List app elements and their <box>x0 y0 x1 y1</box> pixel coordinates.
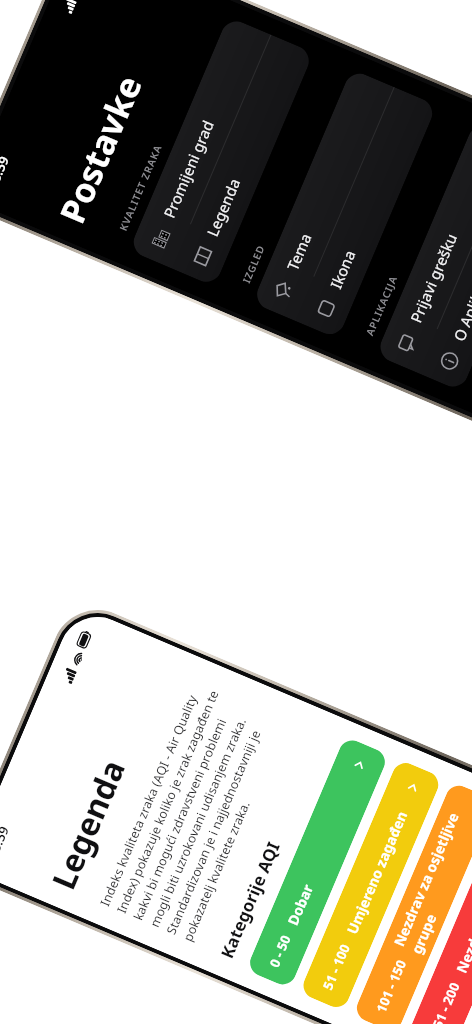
staticText: Postavke <box>48 68 152 230</box>
staticText: O Aplikaciji <box>449 264 472 344</box>
button[interactable]: 0 - 50 <box>246 736 389 989</box>
staticText: 05:59 <box>0 823 13 861</box>
staticText: Dobar <box>283 881 317 928</box>
staticText: Kategorije AQI <box>215 837 285 961</box>
button[interactable]: Legend <box>172 35 314 287</box>
other: About the app <box>437 348 462 373</box>
other: Legend <box>190 244 215 269</box>
button[interactable]: Theme <box>252 69 394 321</box>
staticText: 151 - 200 <box>425 979 464 1024</box>
staticText: KVALITET ZRAKA <box>116 142 165 233</box>
button[interactable]: 201 - 300 <box>459 827 472 1024</box>
staticText: Indeks kvaliteta zraka (AQI - Air Qualit… <box>96 676 291 944</box>
staticText: Nezdrav <box>452 915 472 976</box>
button[interactable]: 151 - 200 <box>406 804 472 1024</box>
staticText: Nezdrav za osjetljive grupe <box>389 796 472 957</box>
other: Change city <box>147 225 172 250</box>
button[interactable]: Change city <box>129 16 270 268</box>
staticText: Ikona <box>325 247 359 292</box>
staticText: Umjereno zagađen <box>342 808 411 937</box>
button[interactable]: Report a bug <box>376 121 472 373</box>
staticText: 51 - 100 <box>318 940 354 993</box>
other: Report a bug <box>394 330 419 355</box>
staticText: 101 - 150 <box>372 957 410 1015</box>
other: App icon <box>314 296 339 321</box>
staticText: IZGLED <box>239 242 268 285</box>
button[interactable]: 51 - 100 <box>299 759 443 1011</box>
button[interactable]: About the app <box>419 140 472 391</box>
staticText: Promijeni grad <box>159 116 218 221</box>
staticText: 0 - 50 <box>265 932 295 970</box>
staticText: 05:59 <box>0 153 13 191</box>
staticText: APLIKACIJA <box>362 273 400 338</box>
staticText: Prijavi grešku <box>405 230 461 326</box>
other: Theme <box>271 278 295 303</box>
button[interactable]: App icon <box>295 87 437 339</box>
staticText: Legenda <box>202 175 244 239</box>
staticText: Tema <box>282 229 316 273</box>
button[interactable]: 101 - 150 <box>353 781 472 1024</box>
staticText: Legenda <box>41 753 135 896</box>
